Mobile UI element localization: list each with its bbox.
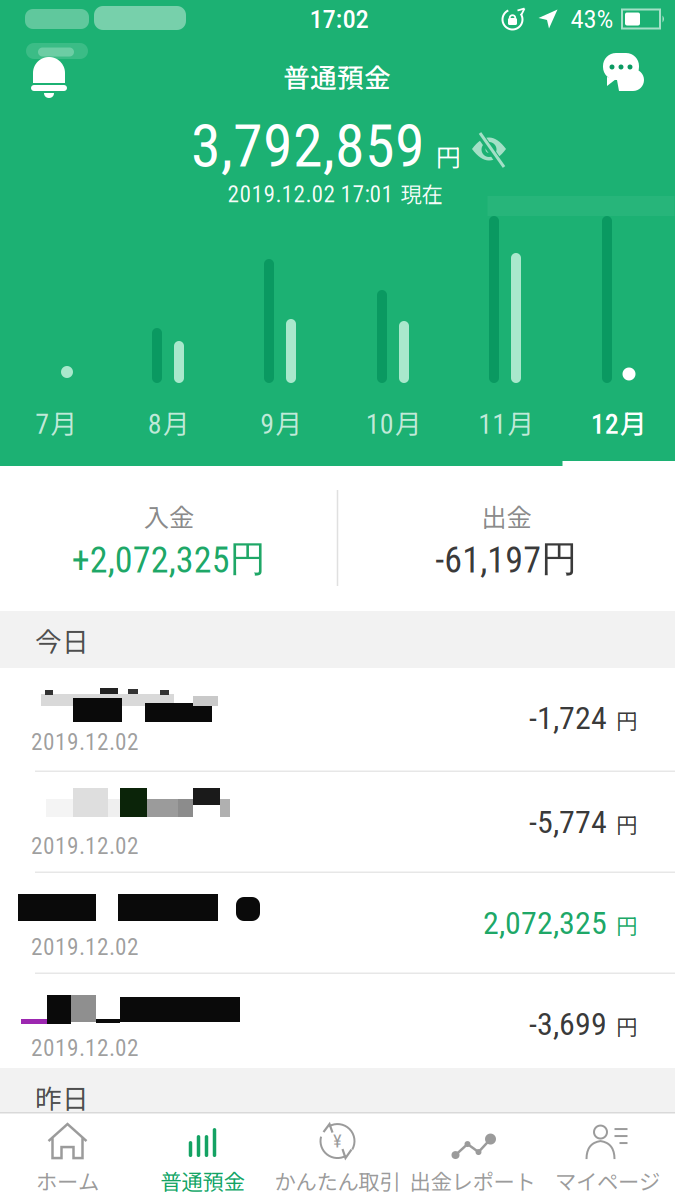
staticText: 普通預金 (160, 1165, 244, 1196)
staticText: 17:02 (309, 3, 368, 35)
staticText: -3,699 (529, 1005, 607, 1043)
staticText: かんたん取引 (274, 1165, 400, 1196)
button[interactable]: Notifications (27, 54, 71, 98)
staticText: 2019.12.02 (31, 832, 139, 860)
staticText: 2019.12.02 (31, 1034, 139, 1062)
staticText: 入金 (144, 498, 194, 534)
staticText: 月 (50, 403, 77, 441)
staticText: -5,774 (529, 803, 607, 841)
staticText: 8 (148, 408, 162, 440)
button[interactable]: 9 (225, 392, 337, 452)
button[interactable]: 10 (337, 392, 450, 452)
staticText: 9 (260, 408, 274, 440)
button[interactable]: ¥ (270, 1119, 405, 1199)
staticText: 月 (163, 403, 190, 441)
button[interactable]: Chat (601, 51, 649, 95)
button[interactable]: マイページ (540, 1119, 675, 1199)
staticText: ¥ (333, 1130, 342, 1152)
staticText: 43% (570, 3, 613, 35)
staticText: -61,197円 (435, 536, 577, 582)
staticText: 2019.12.02 (31, 933, 139, 961)
button[interactable]: 11 (450, 392, 562, 452)
staticText: 今日 (35, 621, 89, 659)
button[interactable]: 2019.12.02 (0, 668, 675, 772)
staticText: 出金レポート (409, 1165, 535, 1196)
staticText: 普通預金 (283, 57, 391, 95)
staticText: 円 (616, 808, 637, 839)
staticText: 10 (366, 408, 394, 440)
button[interactable]: 2019.12.02 (0, 873, 675, 974)
button[interactable]: ホーム (0, 1119, 135, 1199)
staticText: -1,724 (529, 699, 607, 737)
staticText: 月 (507, 403, 534, 441)
staticText: 2019.12.02 17:01 (227, 181, 393, 208)
button[interactable]: 8 (112, 392, 225, 452)
staticText: 昨日 (35, 1078, 89, 1116)
staticText: 出金 (481, 498, 531, 534)
staticText: 3,792,859 (191, 111, 425, 181)
staticText: 2019.12.02 (31, 728, 139, 756)
staticText: +2,072,325円 (72, 536, 266, 582)
staticText: 円 (616, 909, 637, 940)
staticText: ホーム (36, 1165, 99, 1196)
staticText: マイページ (555, 1165, 660, 1196)
staticText: 月 (620, 403, 647, 441)
button[interactable]: 12 (562, 392, 675, 452)
staticText: 7 (35, 408, 49, 440)
button[interactable]: 7 (0, 392, 112, 452)
staticText: 月 (395, 403, 422, 441)
staticText: 11 (478, 408, 506, 440)
staticText: 現在 (400, 178, 442, 208)
staticText: 12 (591, 408, 619, 440)
button[interactable]: 2019.12.02 (0, 974, 675, 1068)
staticText: 円 (616, 704, 637, 735)
staticText: 円 (616, 1010, 637, 1041)
button[interactable]: Hide balance (467, 131, 511, 167)
staticText: 円 (436, 138, 461, 174)
staticText: 2,072,325 (483, 904, 607, 942)
button[interactable]: 出金レポート (405, 1119, 540, 1199)
button[interactable]: 普通預金 (135, 1119, 270, 1199)
button[interactable]: 2019.12.02 (0, 772, 675, 873)
staticText: 月 (275, 403, 302, 441)
